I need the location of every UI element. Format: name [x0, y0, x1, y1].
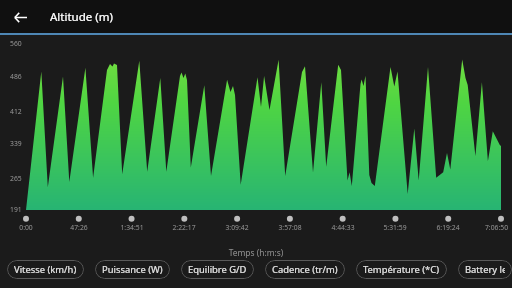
button[interactable]: Vitesse (km/h): [7, 260, 84, 279]
staticText: 339: [10, 139, 22, 148]
button[interactable]: Puissance (W): [95, 260, 170, 279]
staticText: 6:19:24: [428, 223, 468, 232]
staticText: 191: [10, 205, 22, 214]
button[interactable]: Cadence (tr/m): [265, 260, 345, 279]
staticText: 4:44:33: [323, 223, 363, 232]
staticText: 560: [10, 39, 22, 48]
staticText: 3:57:08: [270, 223, 310, 232]
staticText: Equilibre G/D: [188, 263, 247, 276]
button[interactable]: Température (*C): [356, 260, 447, 279]
staticText: 7:06:50: [481, 223, 512, 232]
staticText: 1:34:51: [112, 223, 152, 232]
staticText: Vitesse (km/h): [14, 263, 77, 276]
staticText: Puissance (W): [102, 263, 163, 276]
staticText: 486: [10, 72, 22, 81]
staticText: Température (*C): [363, 263, 440, 276]
staticText: 265: [10, 174, 22, 183]
staticText: 2:22:17: [164, 223, 204, 232]
staticText: 47:26: [59, 223, 99, 232]
staticText: 0:00: [6, 223, 46, 232]
button[interactable]: Equilibre G/D: [181, 260, 254, 279]
staticText: Altitude (m): [50, 9, 113, 25]
staticText: Cadence (tr/m): [272, 263, 338, 276]
button[interactable]: Back: [8, 5, 32, 29]
staticText: 412: [10, 107, 22, 116]
staticText: 3:09:42: [217, 223, 257, 232]
staticText: Temps (h:m:s): [0, 247, 512, 258]
button[interactable]: Battery level (%): [458, 260, 512, 279]
staticText: Battery level (%): [465, 263, 505, 276]
staticText: 5:31:59: [375, 223, 415, 232]
